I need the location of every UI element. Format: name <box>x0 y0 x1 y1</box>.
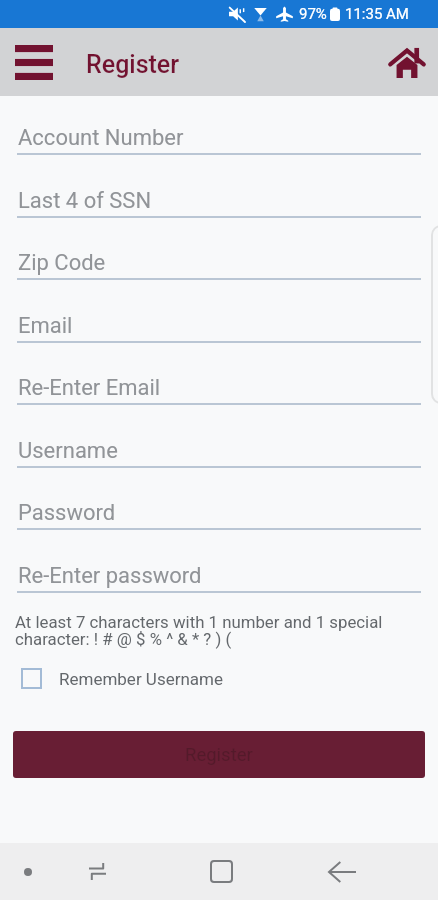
button[interactable]: Home <box>193 843 249 900</box>
button[interactable]: Home <box>381 36 433 88</box>
staticText: Remember Username <box>59 669 223 689</box>
button[interactable]: Username <box>17 446 421 488</box>
button[interactable]: Recent apps <box>69 843 125 900</box>
staticText: Last 4 of SSN <box>18 188 152 214</box>
staticText: Register <box>185 744 253 766</box>
staticText: Register <box>86 50 180 79</box>
button[interactable]: Assistant <box>0 843 56 900</box>
staticText: Re-Enter Email <box>18 375 161 401</box>
button[interactable]: Password <box>17 508 421 550</box>
button[interactable]: Zip Code <box>17 258 421 300</box>
button[interactable]: Account Number <box>17 133 421 175</box>
button[interactable]: Re-Enter Email <box>17 383 421 425</box>
staticText: 97% <box>299 5 327 23</box>
staticText: Username <box>18 438 118 464</box>
button[interactable]: Remember Username <box>13 662 273 695</box>
staticText: Email <box>18 313 73 339</box>
staticText: At least 7 characters with 1 number and … <box>15 612 393 649</box>
button[interactable]: Last 4 of SSN <box>17 196 421 238</box>
button[interactable]: Email <box>17 321 421 363</box>
button[interactable]: Re-Enter password <box>17 571 421 613</box>
staticText: Account Number <box>18 125 184 151</box>
staticText: 11:35 AM <box>345 5 409 23</box>
staticText: Re-Enter password <box>18 563 202 589</box>
staticText: Password <box>18 500 116 526</box>
button[interactable]: Back <box>314 843 370 900</box>
button[interactable]: Menu <box>6 33 62 91</box>
button[interactable]: Register <box>13 731 425 778</box>
staticText: Zip Code <box>18 250 106 276</box>
